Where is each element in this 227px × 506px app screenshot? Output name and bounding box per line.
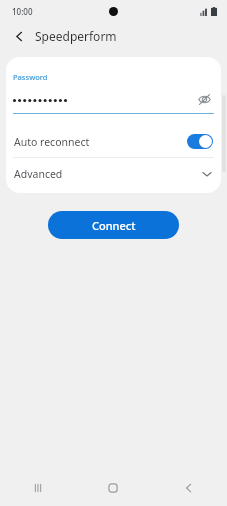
button[interactable]: Back [151, 470, 227, 506]
staticText: Speedperform [35, 28, 117, 44]
button[interactable]: Show password [194, 89, 214, 109]
button[interactable]: Recent apps [0, 470, 75, 506]
button[interactable]: Connect [48, 211, 179, 239]
staticText: 10:00 [12, 6, 33, 17]
button[interactable]: Back [9, 26, 29, 46]
button[interactable]: Auto reconnect [6, 126, 221, 157]
button[interactable]: Password [6, 57, 221, 114]
staticText: Connect [92, 218, 136, 233]
staticText: Password [13, 72, 48, 82]
button[interactable]: Home [75, 470, 151, 506]
button[interactable]: Advanced [6, 158, 221, 189]
button[interactable]: Auto reconnect toggle [187, 134, 213, 149]
staticText: Auto reconnect [14, 135, 187, 149]
staticText: Advanced [14, 167, 201, 181]
